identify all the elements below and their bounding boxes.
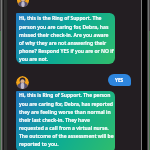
staticText: YES [115,77,124,83]
button[interactable]: Hi, this is the Ring of Support. The per… [16,13,115,64]
button[interactable]: YES [108,74,131,86]
other: Contact avatar [16,76,29,89]
staticText: Hi, this is Ring of Support. The person … [19,92,114,147]
other: Contact avatar [17,0,29,7]
staticText: Hi, this is the Ring of Support. The per… [19,15,114,62]
button[interactable]: Hi, this is Ring of Support. The person … [16,91,115,150]
